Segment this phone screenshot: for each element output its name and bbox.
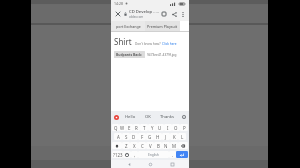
staticText: O <box>174 125 178 131</box>
button[interactable]: H <box>154 133 162 140</box>
button[interactable]: Shift <box>112 142 122 149</box>
staticText: port Exchange <box>116 24 141 29</box>
staticText: Shirt <box>114 36 132 47</box>
staticText: F <box>141 134 144 140</box>
button[interactable]: B <box>154 142 162 149</box>
button[interactable]: Space <box>138 151 169 158</box>
staticText: N <box>164 143 168 149</box>
staticText: M <box>172 143 176 149</box>
staticText: T <box>143 125 146 131</box>
button[interactable]: Enter <box>176 151 188 158</box>
button[interactable]: OK <box>142 114 154 120</box>
staticText: Hello <box>125 114 136 120</box>
button[interactable]: ?123 <box>112 151 123 158</box>
staticText: I <box>167 125 169 131</box>
staticText: A <box>117 134 120 140</box>
staticText: . <box>172 152 174 158</box>
staticText: X <box>133 143 136 149</box>
staticText: D <box>132 134 136 140</box>
button[interactable]: Recents <box>168 160 176 168</box>
staticText: E <box>128 125 131 131</box>
button[interactable]: E <box>126 124 133 131</box>
button[interactable]: Don't know how? <box>135 42 177 46</box>
button[interactable]: T <box>140 124 148 131</box>
button[interactable]: port Exchange <box>111 21 145 32</box>
button[interactable]: Keyboard settings <box>181 114 187 120</box>
button[interactable]: J <box>162 133 170 140</box>
staticText: OK <box>145 114 151 120</box>
button[interactable]: Z <box>122 142 130 149</box>
staticText: cddev.com <box>129 15 144 19</box>
staticText: Budpants Back: <box>116 52 143 57</box>
button[interactable]: Home <box>146 160 154 168</box>
button[interactable]: A <box>114 133 122 140</box>
button[interactable]: P <box>180 124 188 131</box>
button[interactable]: , <box>131 151 138 158</box>
staticText: H <box>156 134 160 140</box>
staticText: Z <box>125 143 128 149</box>
button[interactable]: K <box>170 133 178 140</box>
button[interactable]: Thanks <box>157 114 178 120</box>
staticText: K <box>173 134 176 140</box>
staticText: 9473ee41-4379f.jpg <box>147 53 177 57</box>
staticText: Y <box>151 125 154 131</box>
staticText: V <box>149 143 152 149</box>
button[interactable]: R <box>133 124 140 131</box>
button[interactable]: G <box>146 133 154 140</box>
button[interactable]: S <box>122 133 130 140</box>
button[interactable]: D <box>130 133 138 140</box>
staticText: , <box>134 152 136 158</box>
staticText: L <box>181 134 184 140</box>
staticText: W <box>120 125 125 131</box>
staticText: English <box>148 153 159 157</box>
button[interactable]: Share <box>169 9 179 19</box>
button[interactable]: Tabs <box>159 9 169 19</box>
button[interactable]: Google Assistant <box>113 114 119 120</box>
button[interactable]: Backspace <box>178 142 188 149</box>
button[interactable]: L <box>178 133 186 140</box>
staticText: 14:28 <box>114 1 123 6</box>
button[interactable]: C <box>138 142 146 149</box>
button[interactable]: I <box>164 124 172 131</box>
button[interactable]: N <box>162 142 170 149</box>
button[interactable]: Hello <box>122 114 139 120</box>
button[interactable]: V <box>146 142 154 149</box>
staticText: J <box>165 134 167 140</box>
button[interactable]: U <box>156 124 164 131</box>
button[interactable]: O <box>172 124 180 131</box>
staticText: P <box>183 125 186 131</box>
button[interactable]: X <box>130 142 138 149</box>
staticText: S <box>125 134 128 140</box>
staticText: ?123 <box>113 152 123 158</box>
staticText: C <box>141 143 144 149</box>
button[interactable]: Emoji <box>123 151 131 158</box>
button[interactable]: Premium Playsuit <box>145 21 180 32</box>
staticText: CD Develop - Publi… <box>129 9 159 15</box>
staticText: Don't know how? <box>135 42 162 46</box>
button[interactable]: More options <box>179 10 187 18</box>
button[interactable]: F <box>138 133 146 140</box>
staticText: R <box>135 125 138 131</box>
button[interactable]: . <box>169 151 176 158</box>
staticText: Q <box>114 125 118 131</box>
button[interactable]: Back <box>125 160 133 168</box>
button[interactable]: M <box>170 142 178 149</box>
button[interactable]: Close <box>113 9 123 19</box>
staticText: G <box>148 134 152 140</box>
staticText: Click here <box>162 42 177 46</box>
button[interactable]: W <box>119 124 126 131</box>
staticText: Premium Playsuit <box>147 24 178 29</box>
button[interactable]: Y <box>148 124 156 131</box>
staticText: B <box>157 143 160 149</box>
button[interactable]: Q <box>112 124 119 131</box>
staticText: Thanks <box>160 114 175 120</box>
staticText: U <box>158 125 162 131</box>
